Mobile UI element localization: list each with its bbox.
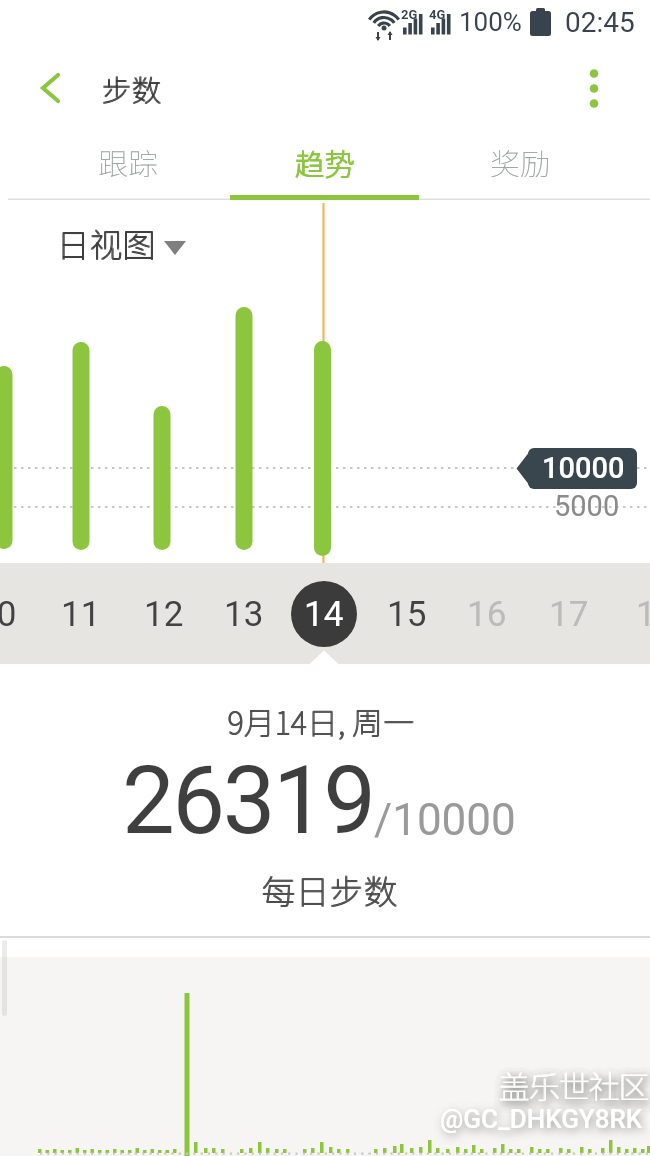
staticText: 日视图 bbox=[56, 219, 155, 267]
staticText: 9月14日, 周一 bbox=[227, 698, 414, 743]
staticText: 4G bbox=[429, 7, 446, 22]
staticText: 10 bbox=[0, 594, 17, 635]
staticText: 100% bbox=[459, 7, 522, 37]
staticText: 趋势 bbox=[294, 140, 354, 183]
staticText: 跟踪 bbox=[98, 140, 158, 183]
staticText: 10000 bbox=[542, 451, 625, 485]
staticText: 5000 bbox=[554, 489, 620, 523]
button[interactable] bbox=[40, 218, 200, 270]
button[interactable] bbox=[20, 60, 80, 116]
staticText: 16 bbox=[467, 594, 507, 635]
staticText: 11 bbox=[61, 594, 101, 635]
staticText: 9月14日, 周一 bbox=[228, 698, 415, 743]
staticText: 盖乐世社区 bbox=[499, 1063, 649, 1108]
staticText: 趋势 bbox=[294, 141, 354, 184]
staticText: 02:45 bbox=[565, 6, 635, 39]
staticText: 18 bbox=[636, 594, 650, 635]
staticText: /10000 bbox=[374, 794, 516, 846]
button[interactable] bbox=[530, 570, 611, 658]
staticText: 步数 bbox=[102, 66, 162, 109]
staticText: 步数 bbox=[102, 67, 162, 110]
staticText: 盖乐世社区 bbox=[498, 1063, 648, 1108]
staticText: 15 bbox=[387, 594, 427, 635]
staticText: 步数 bbox=[101, 67, 161, 110]
button[interactable] bbox=[20, 128, 222, 200]
staticText: 趋势 bbox=[295, 140, 355, 183]
staticText: 17 bbox=[549, 594, 589, 635]
staticText: 日视图 bbox=[57, 219, 156, 267]
button[interactable] bbox=[123, 570, 204, 658]
staticText: 12 bbox=[144, 594, 184, 635]
button[interactable] bbox=[426, 128, 628, 200]
staticText: 每日步数 bbox=[262, 866, 398, 915]
staticText: 盖乐世社区 bbox=[499, 1062, 649, 1107]
button[interactable] bbox=[204, 570, 285, 658]
staticText: 每日步数 bbox=[261, 866, 397, 915]
staticText: 26319 bbox=[122, 746, 374, 856]
staticText: 趋势 bbox=[295, 141, 355, 184]
staticText: 日视图 bbox=[57, 220, 156, 268]
staticText: 13 bbox=[224, 594, 264, 635]
button[interactable] bbox=[449, 570, 530, 658]
staticText: 2G bbox=[401, 7, 418, 22]
button[interactable] bbox=[367, 570, 448, 658]
button[interactable] bbox=[41, 570, 122, 658]
staticText: 9月14日, 周一 bbox=[227, 699, 414, 744]
staticText: @GC_DHKGY8RK bbox=[440, 1104, 643, 1134]
staticText: 9月14日, 周一 bbox=[228, 699, 415, 744]
staticText: 步数 bbox=[101, 66, 161, 109]
staticText: 盖乐世社区 bbox=[498, 1062, 648, 1107]
button[interactable] bbox=[286, 570, 367, 658]
staticText: 奖励 bbox=[490, 140, 550, 183]
button[interactable] bbox=[612, 570, 650, 658]
staticText: 每日步数 bbox=[261, 865, 397, 914]
staticText: 14 bbox=[304, 594, 344, 635]
staticText: 每日步数 bbox=[262, 865, 398, 914]
staticText: 日视图 bbox=[56, 220, 155, 268]
button[interactable] bbox=[223, 128, 425, 200]
button[interactable] bbox=[564, 60, 624, 116]
